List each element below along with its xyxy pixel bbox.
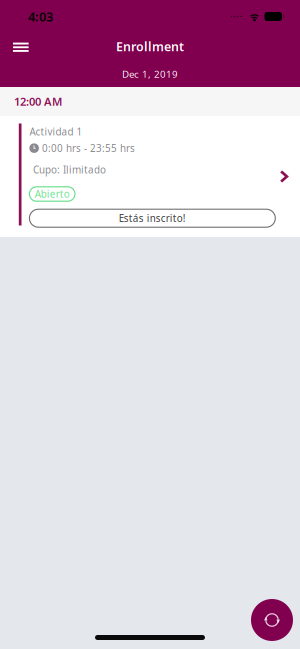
- staticText: 4:03: [28, 8, 53, 25]
- button[interactable]: Menu: [5, 33, 37, 60]
- staticText: 0:00 hrs - 23:55 hrs: [42, 142, 135, 155]
- button[interactable]: Open activity: [271, 163, 297, 189]
- staticText: Abierto: [35, 187, 70, 201]
- staticText: 12:00 AM: [14, 94, 62, 109]
- staticText: Enrollment: [116, 38, 184, 55]
- button[interactable]: Estás inscrito!: [29, 209, 275, 227]
- staticText: Dec 1, 2019: [122, 67, 178, 80]
- staticText: Actividad 1: [29, 125, 82, 138]
- staticText: Estás inscrito!: [119, 212, 186, 225]
- staticText: Cupo: Ilimitado: [33, 163, 106, 176]
- button[interactable]: Refresh: [251, 599, 293, 641]
